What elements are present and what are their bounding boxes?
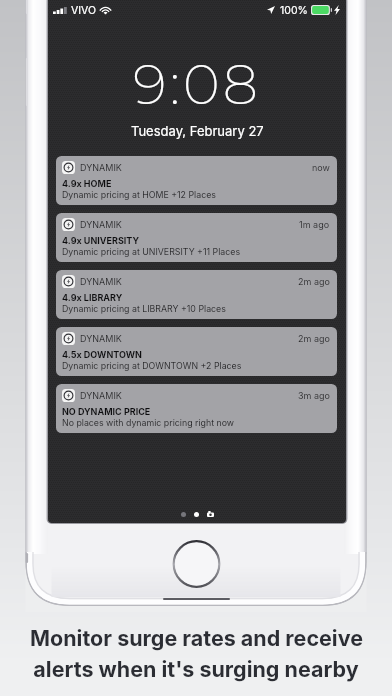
staticText: No places with dynamic pricing right now — [62, 417, 235, 428]
staticText: alerts when it's surging nearby — [33, 656, 359, 682]
staticText: 4.9x UNIVERSITY — [62, 235, 140, 246]
button[interactable]: DYNAMIK — [56, 270, 337, 319]
staticText: 9:08 — [133, 50, 261, 118]
staticText: DYNAMIK — [80, 219, 122, 230]
staticText: Dynamic pricing at LIBRARY +10 Places — [62, 303, 226, 314]
staticText: VIVO — [71, 4, 96, 17]
staticText: DYNAMIK — [80, 276, 122, 287]
staticText: Monitor surge rates and receive — [30, 625, 363, 651]
staticText: DYNAMIK — [80, 162, 122, 173]
staticText: DYNAMIK — [80, 390, 122, 401]
staticText: 3m ago — [298, 390, 330, 401]
staticText: 2m ago — [298, 276, 330, 287]
staticText: 4.9x HOME — [62, 178, 112, 189]
staticText: 1m ago — [299, 219, 330, 230]
staticText: DYNAMIK — [80, 333, 122, 344]
button[interactable]: Camera — [207, 511, 214, 517]
button[interactable]: DYNAMIK — [56, 327, 337, 376]
staticText: NO DYNAMIC PRICE — [62, 406, 151, 417]
staticText: 4.5x DOWNTOWN — [62, 349, 142, 360]
staticText: 100% — [280, 4, 308, 17]
staticText: now — [312, 162, 330, 173]
button[interactable]: DYNAMIK — [56, 384, 337, 433]
button[interactable]: DYNAMIK — [56, 213, 337, 262]
staticText: Dynamic pricing at UNIVERSITY +11 Places — [62, 246, 241, 257]
staticText: 4.9x LIBRARY — [62, 292, 123, 303]
staticText: Dynamic pricing at DOWNTOWN +2 Places — [62, 360, 242, 371]
staticText: Dynamic pricing at HOME +12 Places — [62, 189, 216, 200]
button[interactable]: DYNAMIK — [56, 156, 337, 205]
staticText: Tuesday, February 27 — [131, 123, 264, 139]
staticText: 2m ago — [298, 333, 330, 344]
